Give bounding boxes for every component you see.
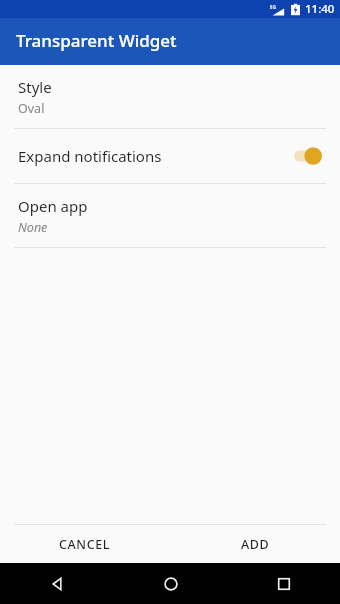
staticText: Transparent Widget (16, 29, 177, 52)
button[interactable]: Home (114, 563, 227, 604)
button[interactable]: Recent apps (227, 563, 340, 604)
staticText: Expand notifications (18, 146, 162, 166)
staticText: Style (18, 77, 52, 97)
button[interactable]: Expand notifications toggle (294, 146, 322, 166)
staticText: Open app (18, 196, 88, 216)
button[interactable]: ADD (170, 525, 340, 563)
staticText: None (18, 219, 48, 236)
button[interactable]: Style (0, 65, 340, 128)
staticText: Oval (18, 100, 45, 117)
button[interactable]: Back (0, 563, 114, 604)
button[interactable]: Expand notifications (0, 129, 340, 183)
staticText: ADD (241, 536, 270, 553)
staticText: CANCEL (59, 536, 111, 553)
button[interactable]: CANCEL (0, 525, 170, 563)
staticText: 11:40 (305, 1, 335, 17)
button[interactable]: Open app (0, 184, 340, 247)
